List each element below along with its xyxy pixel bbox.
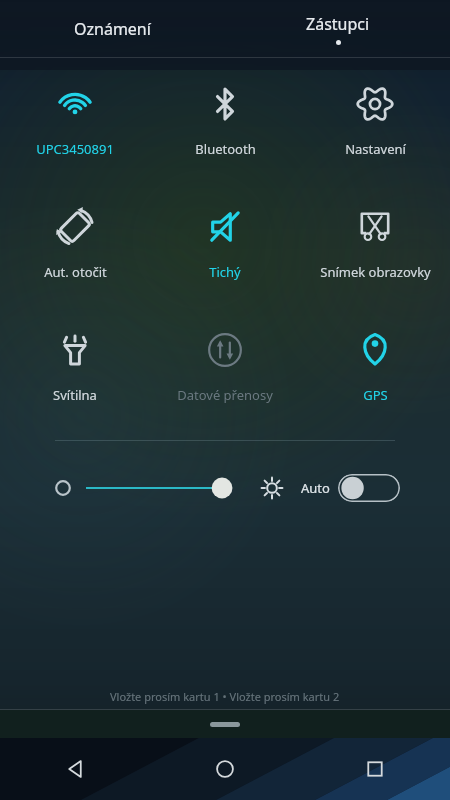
button[interactable]: Back [0, 738, 150, 800]
staticText: UPC3450891 [36, 140, 114, 158]
button[interactable]: Zástupci [225, 0, 450, 58]
staticText: Nastavení [345, 140, 406, 158]
button[interactable]: Snímek obrazovky [300, 205, 450, 281]
other: Tichý [203, 205, 247, 249]
staticText: Datové přenosy [177, 386, 273, 404]
button[interactable]: High brightness [257, 473, 287, 503]
staticText: Tichý [209, 263, 241, 281]
other: Bluetooth [203, 82, 247, 126]
staticText: Zástupci [306, 13, 370, 35]
staticText: Svítilna [53, 386, 97, 404]
button[interactable]: Recent apps [300, 738, 450, 800]
staticText: Aut. otočit [44, 263, 107, 281]
staticText: Auto [301, 479, 330, 497]
other: Nastavení [353, 82, 397, 126]
button[interactable]: Home [150, 738, 300, 800]
staticText: Bluetooth [195, 140, 256, 158]
other: Datové přenosy [203, 328, 247, 372]
button[interactable]: UPC3450891 [0, 82, 150, 158]
button[interactable]: Brightness slider [86, 468, 247, 508]
button[interactable]: Low brightness [50, 475, 76, 501]
button[interactable]: Tichý [150, 205, 300, 281]
other: GPS [353, 328, 397, 372]
button[interactable] [210, 722, 240, 727]
button[interactable]: Auto brightness toggle [338, 474, 400, 502]
button[interactable]: Nastavení [300, 82, 450, 158]
button[interactable]: GPS [300, 328, 450, 404]
button[interactable]: Oznámení [0, 0, 225, 58]
button[interactable]: Aut. otočit [0, 205, 150, 281]
other: Snímek obrazovky [353, 205, 397, 249]
other: UPC3450891 [53, 82, 97, 126]
staticText: GPS [363, 386, 388, 404]
staticText: Vložte prosím kartu 1 • Vložte prosím ka… [110, 689, 340, 704]
staticText: Snímek obrazovky [320, 263, 431, 281]
button[interactable]: Datové přenosy [150, 328, 300, 404]
button[interactable]: Bluetooth [150, 82, 300, 158]
staticText: Oznámení [74, 18, 151, 40]
button[interactable]: Svítilna [0, 328, 150, 404]
other: Svítilna [53, 328, 97, 372]
other: Aut. otočit [53, 205, 97, 249]
